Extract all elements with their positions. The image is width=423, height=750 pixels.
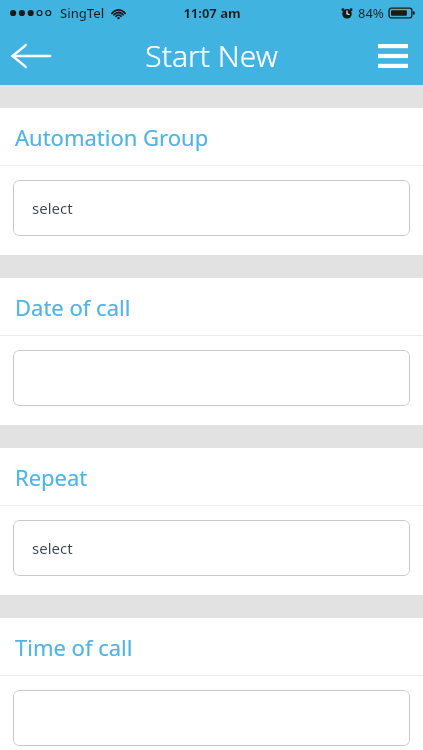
button[interactable]: Automation Group bbox=[0, 108, 423, 166]
button[interactable] bbox=[13, 350, 410, 406]
button[interactable]: select bbox=[13, 520, 410, 576]
button[interactable] bbox=[13, 690, 410, 746]
button[interactable]: Date of call bbox=[0, 278, 423, 336]
staticText: select bbox=[32, 538, 73, 558]
button[interactable]: Repeat bbox=[0, 448, 423, 506]
staticText: SingTel bbox=[60, 4, 105, 22]
staticText: Automation Group bbox=[15, 122, 209, 152]
staticText: Repeat bbox=[15, 462, 88, 492]
button[interactable]: Time of call bbox=[0, 618, 423, 676]
staticText: Time of call bbox=[15, 632, 133, 662]
button[interactable]: Back bbox=[0, 26, 62, 85]
staticText: Date of call bbox=[15, 292, 131, 322]
button[interactable]: Menu bbox=[363, 26, 423, 85]
staticText: 84% bbox=[358, 4, 384, 22]
staticText: Start New bbox=[145, 35, 278, 76]
staticText: select bbox=[32, 198, 73, 218]
staticText: 11:07 am bbox=[183, 4, 241, 22]
button[interactable]: select bbox=[13, 180, 410, 236]
